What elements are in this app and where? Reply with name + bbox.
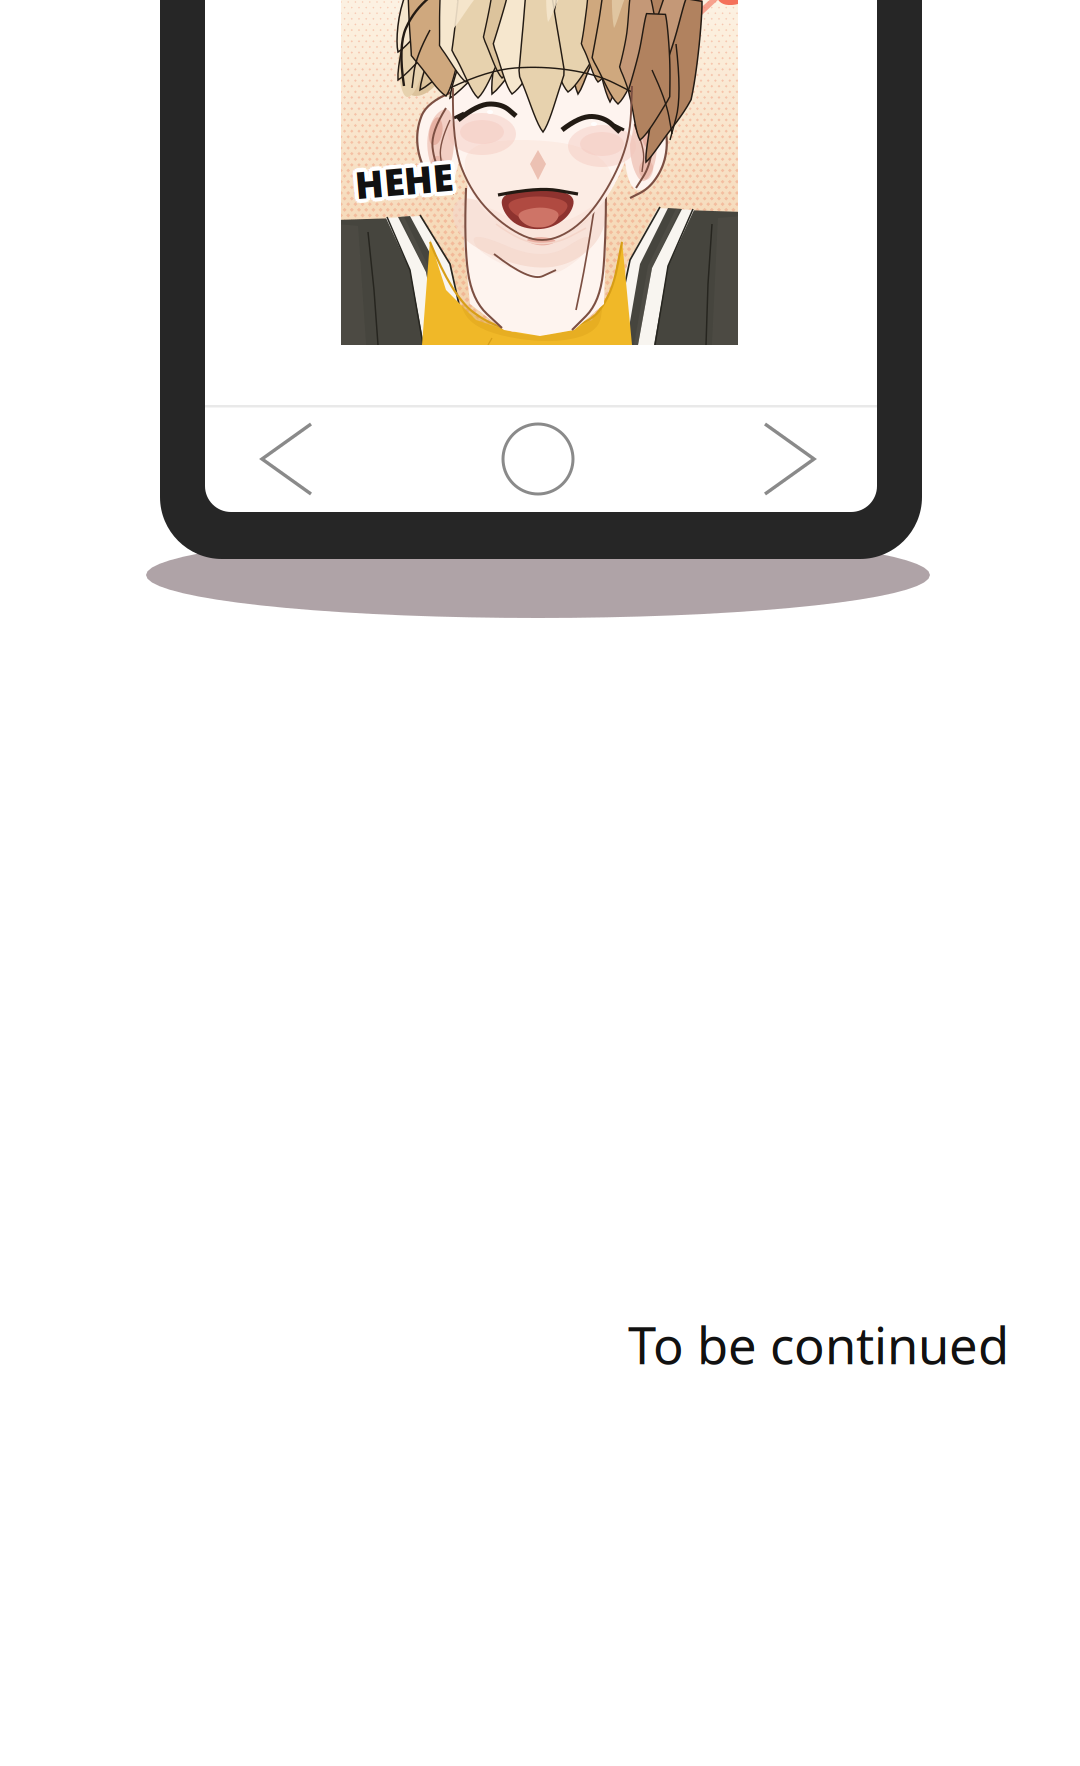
staticText: HEHE [344,184,442,233]
staticText: HEHE [340,190,438,240]
staticText: To be continued [628,1311,1009,1378]
staticText: HEHE [344,188,442,238]
button[interactable]: Next page [724,405,854,513]
staticText: HEHE [336,186,434,236]
staticText: HEHE [338,182,436,232]
staticText: HEHE [342,190,440,239]
staticText: HEHE [338,190,436,239]
button[interactable]: Episode list [482,405,594,513]
staticText: HEHE [340,182,438,231]
staticText: HEHE [336,188,434,238]
staticText: HEHE [340,186,438,236]
staticText: HEHE [344,186,442,236]
staticText: HEHE [336,184,434,233]
staticText: HEHE [342,182,440,232]
button[interactable]: Previous page [222,405,352,513]
